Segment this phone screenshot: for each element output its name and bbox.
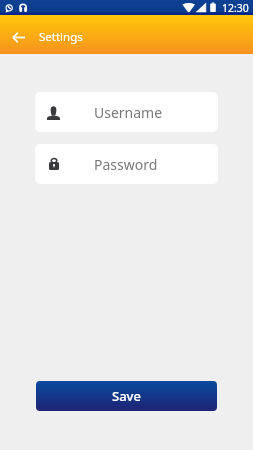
staticText: Password <box>94 155 158 174</box>
button[interactable]: Username <box>35 92 218 132</box>
button[interactable]: Back <box>12 32 25 43</box>
staticText: Username <box>94 103 163 122</box>
button[interactable]: Save <box>36 381 217 411</box>
staticText: Settings <box>39 29 83 45</box>
staticText: 12:30 <box>222 1 249 15</box>
button[interactable]: Password <box>35 144 218 184</box>
staticText: Save <box>112 387 141 405</box>
